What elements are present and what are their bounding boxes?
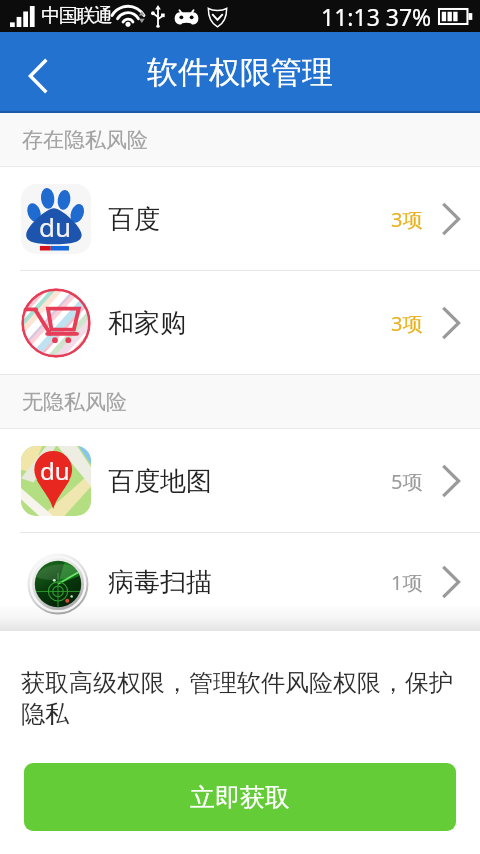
- button[interactable]: du: [0, 167, 480, 271]
- staticText: 中国联通: [42, 4, 112, 28]
- staticText: 百度: [108, 203, 160, 236]
- button[interactable]: du: [0, 429, 480, 533]
- staticText: 软件权限管理: [147, 53, 333, 92]
- staticText: 病毒扫描: [108, 566, 212, 599]
- button[interactable]: 返回: [0, 32, 66, 113]
- staticText: 和家购: [108, 307, 186, 340]
- staticText: 获取高级权限，管理软件风险权限，保护隐私: [21, 668, 462, 729]
- staticText: 11:13 37%: [321, 1, 432, 32]
- staticText: 存在隐私风险: [22, 127, 148, 153]
- staticText: 立即获取: [190, 782, 290, 813]
- staticText: du: [40, 454, 70, 487]
- staticText: 百度地图: [108, 465, 212, 498]
- staticText: 1项: [391, 569, 423, 596]
- button[interactable]: 立即获取: [24, 763, 456, 831]
- staticText: 3项: [391, 206, 423, 233]
- button[interactable]: 病毒扫描: [0, 533, 480, 631]
- button[interactable]: 和家购: [0, 271, 480, 375]
- staticText: du: [39, 209, 72, 244]
- staticText: 无隐私风险: [22, 389, 127, 415]
- staticText: 3项: [391, 310, 423, 337]
- staticText: 5项: [391, 468, 423, 495]
